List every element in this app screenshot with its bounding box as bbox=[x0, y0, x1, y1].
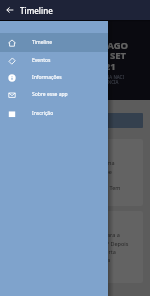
button[interactable]: Inscrição bbox=[0, 105, 108, 122]
button[interactable]: Eventos bbox=[0, 52, 108, 69]
staticText: Eventos bbox=[32, 57, 51, 64]
staticText: Gostaríamos muito de saber se alguma tur… bbox=[13, 159, 121, 199]
button[interactable]: Informações bbox=[0, 69, 108, 86]
staticText: 17 AGO a 5 SET 2021 bbox=[94, 39, 129, 73]
staticText: Timeline bbox=[32, 39, 53, 46]
button[interactable]: Pessoal, tudo bem? bbox=[7, 139, 143, 206]
staticText: Inscrição bbox=[32, 110, 54, 117]
staticText: Informações bbox=[32, 74, 62, 81]
staticText: Sobre esse app bbox=[32, 91, 68, 98]
staticText: Publicações bbox=[11, 116, 51, 126]
button[interactable]: Timeline bbox=[0, 33, 108, 52]
staticText: Timeline bbox=[20, 5, 53, 16]
staticText: Pedimos que todos cheguem cedo para a ap… bbox=[13, 231, 129, 271]
button[interactable]: Publicações bbox=[7, 113, 143, 128]
button[interactable]: Back bbox=[0, 0, 20, 20]
button[interactable]: Estamos chegando par... bbox=[7, 211, 143, 283]
button[interactable]: Sobre esse app bbox=[0, 86, 108, 103]
staticText: SEMANA NACI DE CIENCIA bbox=[94, 74, 124, 85]
